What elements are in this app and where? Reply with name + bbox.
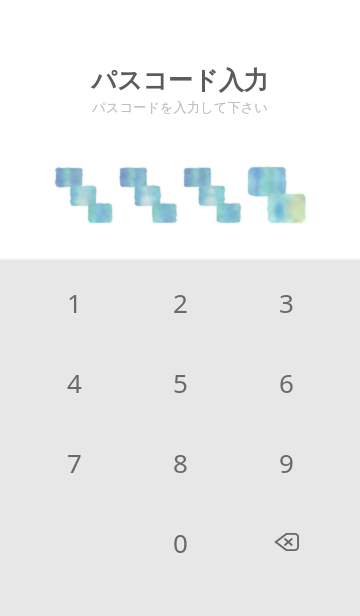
staticText: パスコード入力 (91, 65, 269, 96)
staticText: 2 (173, 285, 188, 320)
button[interactable]: 2 (127, 262, 233, 342)
button[interactable]: 0 (127, 502, 233, 582)
staticText: 3 (279, 285, 294, 320)
button[interactable]: 8 (127, 422, 233, 502)
button[interactable]: 7 (21, 422, 127, 502)
staticText: 6 (279, 365, 294, 400)
staticText: 5 (173, 365, 188, 400)
button[interactable]: 4 (21, 342, 127, 422)
other: Backspace (269, 525, 303, 559)
button[interactable]: Backspace (233, 502, 339, 582)
staticText: 8 (173, 445, 188, 480)
button[interactable]: 1 (21, 262, 127, 342)
button[interactable]: 3 (233, 262, 339, 342)
staticText: 7 (67, 445, 82, 480)
staticText: 0 (173, 525, 188, 560)
button[interactable]: 6 (233, 342, 339, 422)
button[interactable]: 5 (127, 342, 233, 422)
button[interactable]: 9 (233, 422, 339, 502)
staticText: 9 (279, 445, 294, 480)
staticText: パスコードを入力して下さい (92, 99, 268, 116)
staticText: 1 (67, 285, 82, 320)
staticText: 4 (67, 365, 82, 400)
